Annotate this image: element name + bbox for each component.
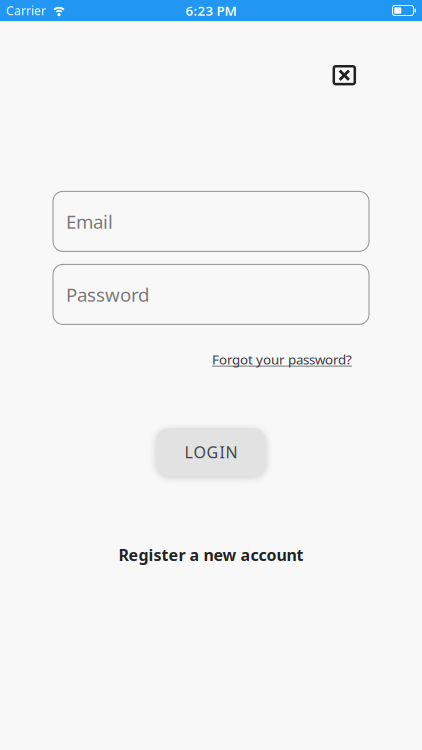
button[interactable]: Forgot your password? — [212, 350, 352, 368]
staticText: 6:23 PM — [185, 2, 236, 19]
staticText: Carrier — [6, 2, 46, 18]
staticText: Forgot your password? — [212, 350, 352, 368]
button[interactable]: Password — [53, 264, 369, 324]
staticText: Register a new account — [118, 544, 303, 565]
staticText: Email — [66, 209, 113, 234]
button[interactable]: LOGIN — [156, 428, 266, 476]
staticText: Password — [66, 282, 149, 307]
button[interactable]: Email — [53, 191, 369, 251]
staticText: LOGIN — [184, 441, 237, 463]
button[interactable] — [333, 65, 356, 85]
button[interactable]: Register a new account — [118, 544, 303, 565]
